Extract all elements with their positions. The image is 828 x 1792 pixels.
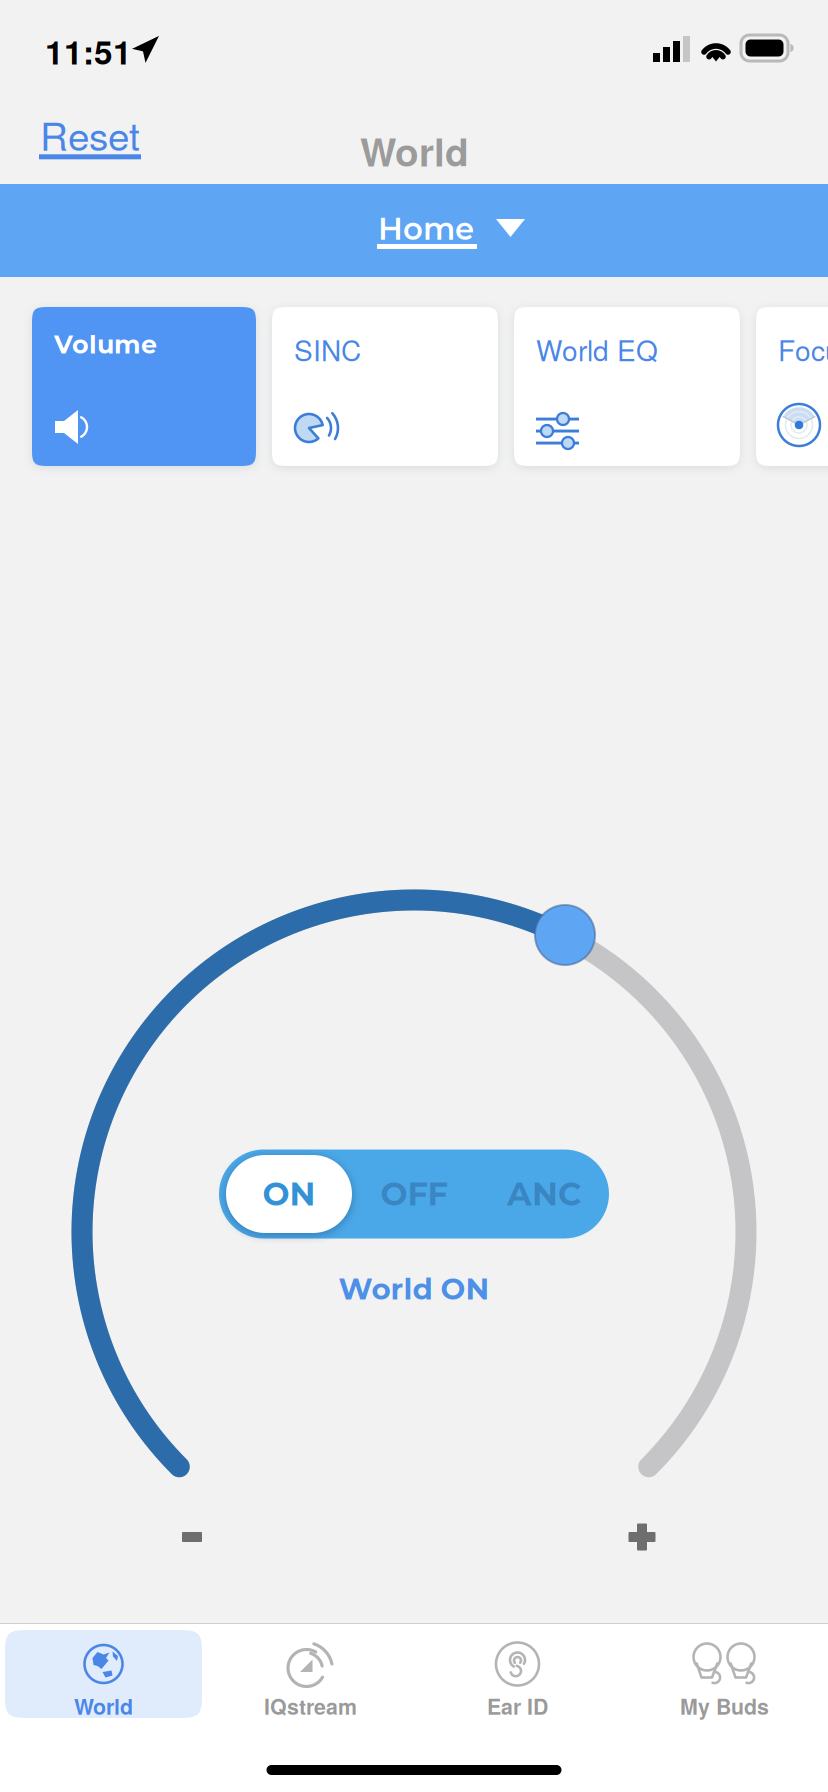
button[interactable]: Increase volume xyxy=(607,1502,677,1572)
button[interactable]: Decrease volume xyxy=(157,1502,227,1572)
button[interactable]: My Buds xyxy=(621,1630,828,1718)
staticText: Ear ID xyxy=(487,1691,548,1721)
button[interactable]: ANC xyxy=(479,1149,609,1238)
button[interactable]: IQstream xyxy=(207,1630,414,1718)
staticText: 11:51 xyxy=(45,27,132,75)
staticText: SINC xyxy=(294,329,361,369)
staticText: My Buds xyxy=(680,1691,769,1721)
staticText: World xyxy=(360,123,469,178)
staticText: World xyxy=(74,1691,133,1721)
button[interactable]: OFF xyxy=(349,1149,479,1238)
staticText: Home xyxy=(378,210,474,247)
button[interactable]: Focus xyxy=(756,307,828,466)
staticText: World EQ xyxy=(536,329,658,369)
staticText: ON xyxy=(262,1174,315,1213)
button[interactable]: World xyxy=(0,1630,207,1718)
button[interactable]: ON xyxy=(226,1155,352,1233)
button[interactable]: SINC xyxy=(272,307,498,466)
button[interactable]: World EQ xyxy=(514,307,740,466)
button[interactable]: Home xyxy=(0,184,828,277)
staticText: ANC xyxy=(507,1174,581,1213)
staticText: Reset xyxy=(40,106,140,162)
staticText: IQstream xyxy=(264,1691,357,1721)
staticText: OFF xyxy=(380,1174,447,1213)
button[interactable]: Ear ID xyxy=(414,1630,621,1718)
staticText: Volume xyxy=(54,329,157,360)
button[interactable]: Reset xyxy=(39,124,141,168)
staticText: World ON xyxy=(338,1271,489,1307)
button[interactable]: Volume xyxy=(32,307,256,466)
staticText: Focus xyxy=(778,329,828,369)
